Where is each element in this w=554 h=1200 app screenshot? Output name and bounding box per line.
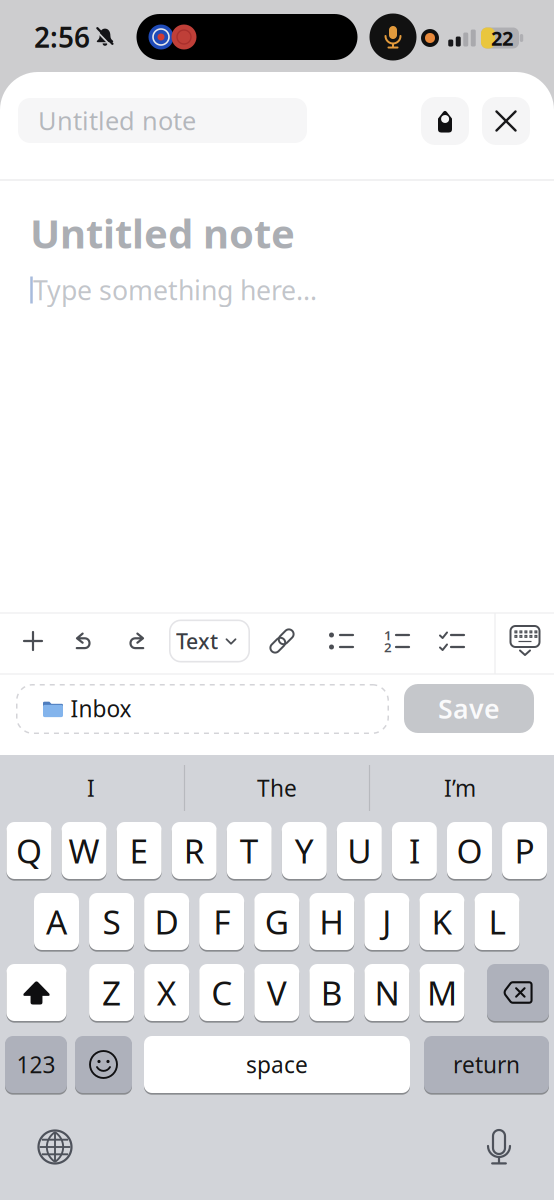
button[interactable]: E: [117, 822, 162, 881]
button[interactable]: F: [199, 893, 244, 952]
staticText: Untitled note: [38, 104, 196, 137]
button[interactable]: Q: [6, 822, 51, 881]
staticText: O: [456, 828, 482, 873]
staticText: V: [267, 970, 287, 1015]
button[interactable]: Text style: [169, 619, 250, 662]
button[interactable]: P: [502, 822, 547, 881]
button[interactable]: I: [6, 763, 176, 813]
button[interactable]: Close: [482, 97, 530, 145]
staticText: The: [257, 773, 297, 803]
staticText: return: [453, 1049, 520, 1079]
staticText: Type something here…: [33, 272, 317, 308]
button[interactable]: Bulleted list: [329, 631, 353, 651]
button[interactable]: Save: [404, 684, 534, 733]
staticText: D: [155, 899, 179, 944]
button[interactable]: Note title: [18, 98, 307, 143]
button[interactable]: Z: [89, 964, 134, 1023]
button[interactable]: Y: [282, 822, 327, 881]
button[interactable]: W: [62, 822, 107, 881]
staticText: G: [265, 899, 289, 944]
staticText: Untitled note: [30, 206, 295, 259]
button[interactable]: 123: [5, 1036, 67, 1095]
staticText: U: [347, 828, 371, 873]
staticText: space: [246, 1049, 308, 1079]
button[interactable]: G: [254, 893, 299, 952]
staticText: 123: [16, 1049, 55, 1079]
button[interactable]: V: [254, 964, 299, 1023]
button[interactable]: D: [144, 893, 189, 952]
button[interactable]: B: [309, 964, 354, 1023]
button[interactable]: N: [364, 964, 409, 1023]
staticText: F: [213, 899, 230, 944]
staticText: Q: [16, 828, 42, 873]
button[interactable]: M: [419, 964, 464, 1023]
button[interactable]: Numbered list: [385, 631, 409, 651]
button[interactable]: O: [447, 822, 492, 881]
button[interactable]: Delete: [487, 964, 549, 1023]
button[interactable]: Dismiss keyboard: [510, 626, 539, 656]
button[interactable]: Insert link: [272, 631, 292, 651]
staticText: B: [321, 970, 343, 1015]
staticText: 22: [491, 25, 513, 51]
button[interactable]: Inbox folder: [16, 684, 389, 734]
button[interactable]: I: [392, 822, 437, 881]
button[interactable]: Dictate: [487, 1129, 511, 1165]
staticText: H: [319, 899, 344, 944]
staticText: N: [374, 970, 399, 1015]
staticText: A: [46, 899, 67, 944]
button[interactable]: J: [364, 893, 409, 952]
button[interactable]: I’m: [375, 763, 545, 813]
staticText: S: [103, 899, 121, 944]
staticText: I: [409, 828, 420, 873]
button[interactable]: R: [172, 822, 217, 881]
staticText: 2: [384, 638, 392, 656]
button[interactable]: L: [474, 893, 519, 952]
staticText: W: [69, 828, 100, 873]
button[interactable]: A: [34, 893, 79, 952]
staticText: C: [211, 970, 232, 1015]
staticText: Z: [102, 970, 121, 1015]
staticText: R: [184, 828, 205, 873]
staticText: E: [130, 828, 149, 873]
button[interactable]: K: [419, 893, 464, 952]
staticText: I: [87, 773, 95, 803]
button[interactable]: H: [309, 893, 354, 952]
staticText: L: [488, 899, 505, 944]
staticText: K: [431, 899, 452, 944]
staticText: 2:56: [34, 18, 90, 56]
staticText: Text: [176, 627, 218, 655]
staticText: J: [382, 899, 391, 944]
button[interactable]: Emoji: [75, 1036, 132, 1095]
button[interactable]: Shift: [6, 964, 66, 1023]
staticText: Save: [438, 691, 500, 726]
button[interactable]: Tags: [421, 97, 469, 145]
button[interactable]: Redo: [126, 632, 146, 652]
button[interactable]: U: [337, 822, 382, 881]
staticText: M: [427, 970, 457, 1015]
staticText: Inbox: [70, 693, 131, 723]
button[interactable]: Undo: [74, 632, 94, 652]
staticText: P: [514, 828, 534, 873]
button[interactable]: S: [89, 893, 134, 952]
staticText: T: [240, 828, 259, 873]
button[interactable]: The: [192, 763, 362, 813]
button[interactable]: T: [227, 822, 272, 881]
button[interactable]: C: [199, 964, 244, 1023]
button[interactable]: X: [144, 964, 189, 1023]
button[interactable]: space: [144, 1036, 410, 1095]
staticText: X: [157, 970, 177, 1015]
button[interactable]: return: [424, 1036, 549, 1095]
staticText: Y: [295, 828, 314, 873]
button[interactable]: Checklist: [440, 631, 464, 651]
button[interactable]: Add attachment: [24, 632, 42, 650]
button[interactable]: Next keyboard: [38, 1130, 71, 1163]
staticText: I’m: [444, 773, 476, 803]
staticText: 1: [384, 626, 392, 644]
